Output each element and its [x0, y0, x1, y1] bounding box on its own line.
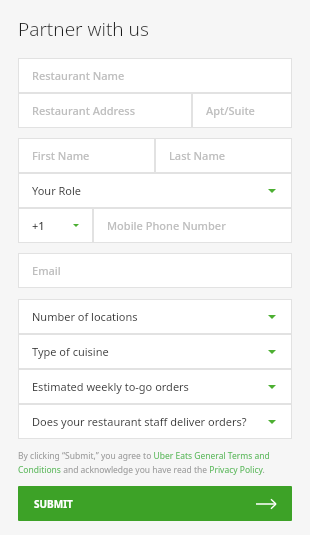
staticText: +1 — [32, 218, 45, 233]
staticText: First Name — [32, 148, 90, 163]
staticText: Restaurant Address — [32, 103, 135, 118]
staticText: Partner with us — [18, 16, 149, 42]
button[interactable]: +1 — [18, 208, 93, 243]
button[interactable]: SUBMIT — [18, 486, 292, 521]
staticText: Type of cuisine — [32, 344, 109, 359]
button[interactable]: Last Name — [155, 138, 292, 173]
staticText: Apt/Suite — [206, 103, 255, 118]
staticText: Last Name — [169, 148, 226, 163]
staticText: Estimated weekly to-go orders — [32, 379, 189, 394]
staticText: Email — [32, 263, 61, 278]
button[interactable]: Does your restaurant staff deliver order… — [18, 404, 292, 439]
staticText: Restaurant Name — [32, 68, 125, 83]
staticText: By clicking “Submit,” you agree to Uber … — [18, 450, 292, 475]
button[interactable]: Number of locations — [18, 299, 292, 334]
staticText: Your Role — [32, 183, 82, 198]
staticText: Number of locations — [32, 309, 138, 324]
button[interactable]: Type of cuisine — [18, 334, 292, 369]
staticText: Mobile Phone Number — [107, 218, 226, 233]
staticText: SUBMIT — [34, 497, 73, 511]
staticText: Does your restaurant staff deliver order… — [32, 414, 247, 429]
button[interactable]: Mobile Phone Number — [93, 208, 292, 243]
button[interactable]: Apt/Suite — [192, 93, 292, 128]
button[interactable]: First Name — [18, 138, 155, 173]
button[interactable]: Estimated weekly to-go orders — [18, 369, 292, 404]
button[interactable]: Restaurant Name — [18, 58, 292, 93]
other: Submit — [256, 498, 276, 510]
button[interactable]: Your Role — [18, 173, 292, 208]
button[interactable]: Email — [18, 253, 292, 288]
button[interactable]: Restaurant Address — [18, 93, 192, 128]
